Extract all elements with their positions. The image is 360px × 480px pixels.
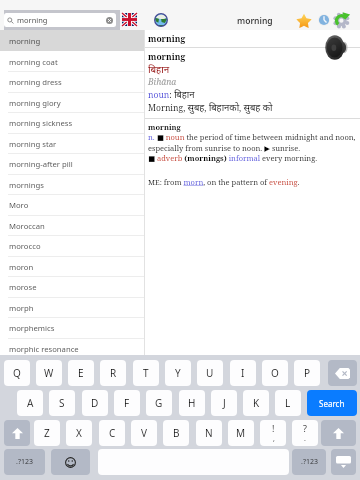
- button[interactable]: morocco: [0, 235, 144, 256]
- staticText: morning coat: [9, 57, 58, 67]
- button[interactable]: Search: [307, 390, 357, 416]
- button[interactable]: M: [228, 420, 254, 446]
- button[interactable]: T: [133, 360, 159, 386]
- staticText: S: [59, 396, 65, 410]
- button[interactable]: B: [163, 420, 189, 446]
- button[interactable]: K: [243, 390, 269, 416]
- button[interactable]: Emoji: [51, 449, 90, 475]
- staticText: C: [109, 426, 116, 440]
- staticText: ■ adverb (mornings) informal every morni…: [148, 153, 318, 163]
- button[interactable]: G: [146, 390, 172, 416]
- button[interactable]: Y: [165, 360, 191, 386]
- staticText: morning dress: [9, 77, 62, 87]
- button[interactable]: morning star: [0, 133, 144, 154]
- staticText: morphemics: [9, 323, 55, 333]
- staticText: .: [304, 434, 306, 444]
- staticText: N: [205, 426, 213, 440]
- staticText: J: [223, 396, 226, 410]
- button[interactable]: Moro: [0, 194, 144, 215]
- button[interactable]: History: [318, 14, 330, 26]
- button[interactable]: E: [68, 360, 94, 386]
- staticText: morocco: [9, 241, 41, 251]
- button[interactable]: N: [196, 420, 222, 446]
- staticText: morning: [9, 36, 41, 46]
- staticText: Z: [44, 426, 50, 440]
- button[interactable]: morphic resonance: [0, 338, 144, 359]
- button[interactable]: P: [294, 360, 320, 386]
- button[interactable]: J: [211, 390, 237, 416]
- button[interactable]: morning: [0, 30, 144, 51]
- button[interactable]: morning: [4, 13, 116, 27]
- staticText: X: [76, 426, 82, 440]
- button[interactable]: X: [66, 420, 92, 446]
- staticText: morose: [9, 282, 37, 292]
- button[interactable]: L: [275, 390, 301, 416]
- button[interactable]: morning dress: [0, 71, 144, 92]
- staticText: बिहान: [148, 63, 170, 76]
- button[interactable]: C: [99, 420, 125, 446]
- button[interactable]: A: [17, 390, 43, 416]
- button[interactable]: morose: [0, 276, 144, 297]
- staticText: noun: बिहान: [148, 88, 195, 101]
- button[interactable]: morning coat: [0, 51, 144, 72]
- button[interactable]: Q: [4, 360, 30, 386]
- button[interactable]: D: [82, 390, 108, 416]
- staticText: ?: [303, 422, 307, 434]
- staticText: morning sickness: [9, 118, 73, 128]
- button[interactable]: Shift: [321, 420, 356, 446]
- staticText: Bihāna: [148, 76, 177, 88]
- staticText: n. ■ noun the period of time between mid…: [148, 132, 356, 153]
- button[interactable]: O: [262, 360, 288, 386]
- staticText: morning star: [9, 139, 57, 149]
- staticText: morphic resonance: [9, 344, 79, 354]
- button[interactable]: Favorites: [296, 13, 312, 29]
- staticText: mornings: [9, 180, 44, 190]
- staticText: D: [91, 396, 99, 410]
- button[interactable]: F: [114, 390, 140, 416]
- button[interactable]: Backspace: [328, 360, 357, 386]
- button[interactable]: morning-after pill: [0, 153, 144, 174]
- staticText: E: [78, 366, 84, 380]
- button[interactable]: Z: [34, 420, 60, 446]
- staticText: morph: [9, 303, 34, 313]
- button[interactable]: moron: [0, 256, 144, 277]
- staticText: V: [141, 426, 147, 440]
- button[interactable]: ?: [292, 420, 318, 446]
- button[interactable]: morph: [0, 297, 144, 318]
- staticText: Q: [13, 366, 21, 380]
- button[interactable]: V: [131, 420, 157, 446]
- button[interactable]: morning sickness: [0, 112, 144, 133]
- button[interactable]: S: [49, 390, 75, 416]
- button[interactable]: morphemics: [0, 317, 144, 338]
- staticText: U: [206, 366, 214, 380]
- staticText: .?123: [301, 457, 318, 467]
- button[interactable]: !: [260, 420, 286, 446]
- button[interactable]: Source language: [122, 13, 137, 26]
- staticText: Moroccan: [9, 221, 45, 231]
- button[interactable]: W: [36, 360, 62, 386]
- staticText: !: [272, 422, 275, 434]
- button[interactable]: Hide keyboard: [331, 449, 356, 475]
- staticText: I: [241, 366, 245, 380]
- button[interactable]: Numbers: [4, 449, 45, 475]
- staticText: H: [188, 396, 196, 410]
- staticText: morning: [148, 51, 186, 63]
- button[interactable]: mornings: [0, 174, 144, 195]
- staticText: Morning, सुबह, बिहानको, सुबह को: [148, 101, 273, 114]
- button[interactable]: U: [197, 360, 223, 386]
- button[interactable]: H: [179, 390, 205, 416]
- button[interactable]: Settings: [334, 12, 350, 28]
- button[interactable]: I: [230, 360, 256, 386]
- button[interactable]: R: [100, 360, 126, 386]
- staticText: morning glory: [9, 98, 61, 108]
- button[interactable]: morning glory: [0, 92, 144, 113]
- button[interactable]: Numbers: [292, 449, 326, 475]
- button[interactable]: Pronounce: [325, 35, 349, 60]
- staticText: morning: [17, 15, 48, 25]
- button[interactable]: Moroccan: [0, 215, 144, 236]
- staticText: W: [44, 366, 54, 380]
- button[interactable]: Shift: [4, 420, 30, 446]
- button[interactable]: Translate: [154, 13, 168, 27]
